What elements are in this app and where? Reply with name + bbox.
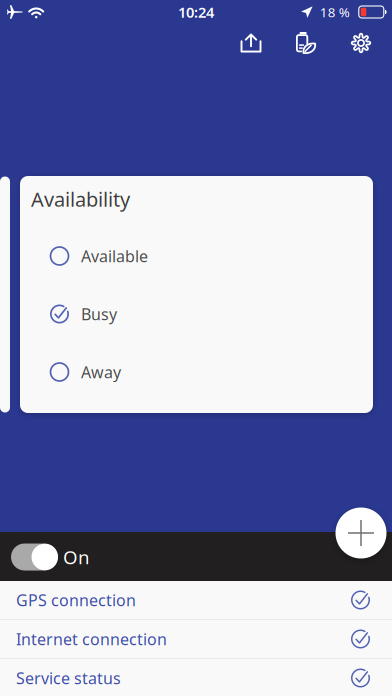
staticText: Internet connection	[16, 628, 167, 650]
staticText: On	[63, 545, 90, 569]
button[interactable]: Service status	[0, 659, 392, 696]
button[interactable]: GPS connection	[0, 581, 392, 619]
button[interactable]: Internet connection	[0, 620, 392, 658]
button[interactable]: Busy	[20, 285, 372, 343]
staticText: GPS connection	[16, 589, 136, 611]
button[interactable]: Share	[223, 21, 278, 65]
staticText: Availability	[31, 186, 130, 212]
button[interactable]: Settings	[333, 21, 388, 65]
staticText: 18 %	[320, 3, 350, 21]
staticText: Away	[81, 361, 121, 383]
button[interactable]: Away	[20, 343, 372, 401]
staticText: 10:24	[178, 2, 214, 22]
staticText: Service status	[16, 667, 121, 689]
button[interactable]: On	[0, 532, 392, 581]
staticText: Available	[81, 245, 148, 267]
button[interactable]: Available	[20, 227, 372, 285]
button[interactable]: Add	[335, 507, 386, 558]
button[interactable]: Battery saver	[278, 21, 333, 65]
staticText: Busy	[81, 303, 117, 325]
